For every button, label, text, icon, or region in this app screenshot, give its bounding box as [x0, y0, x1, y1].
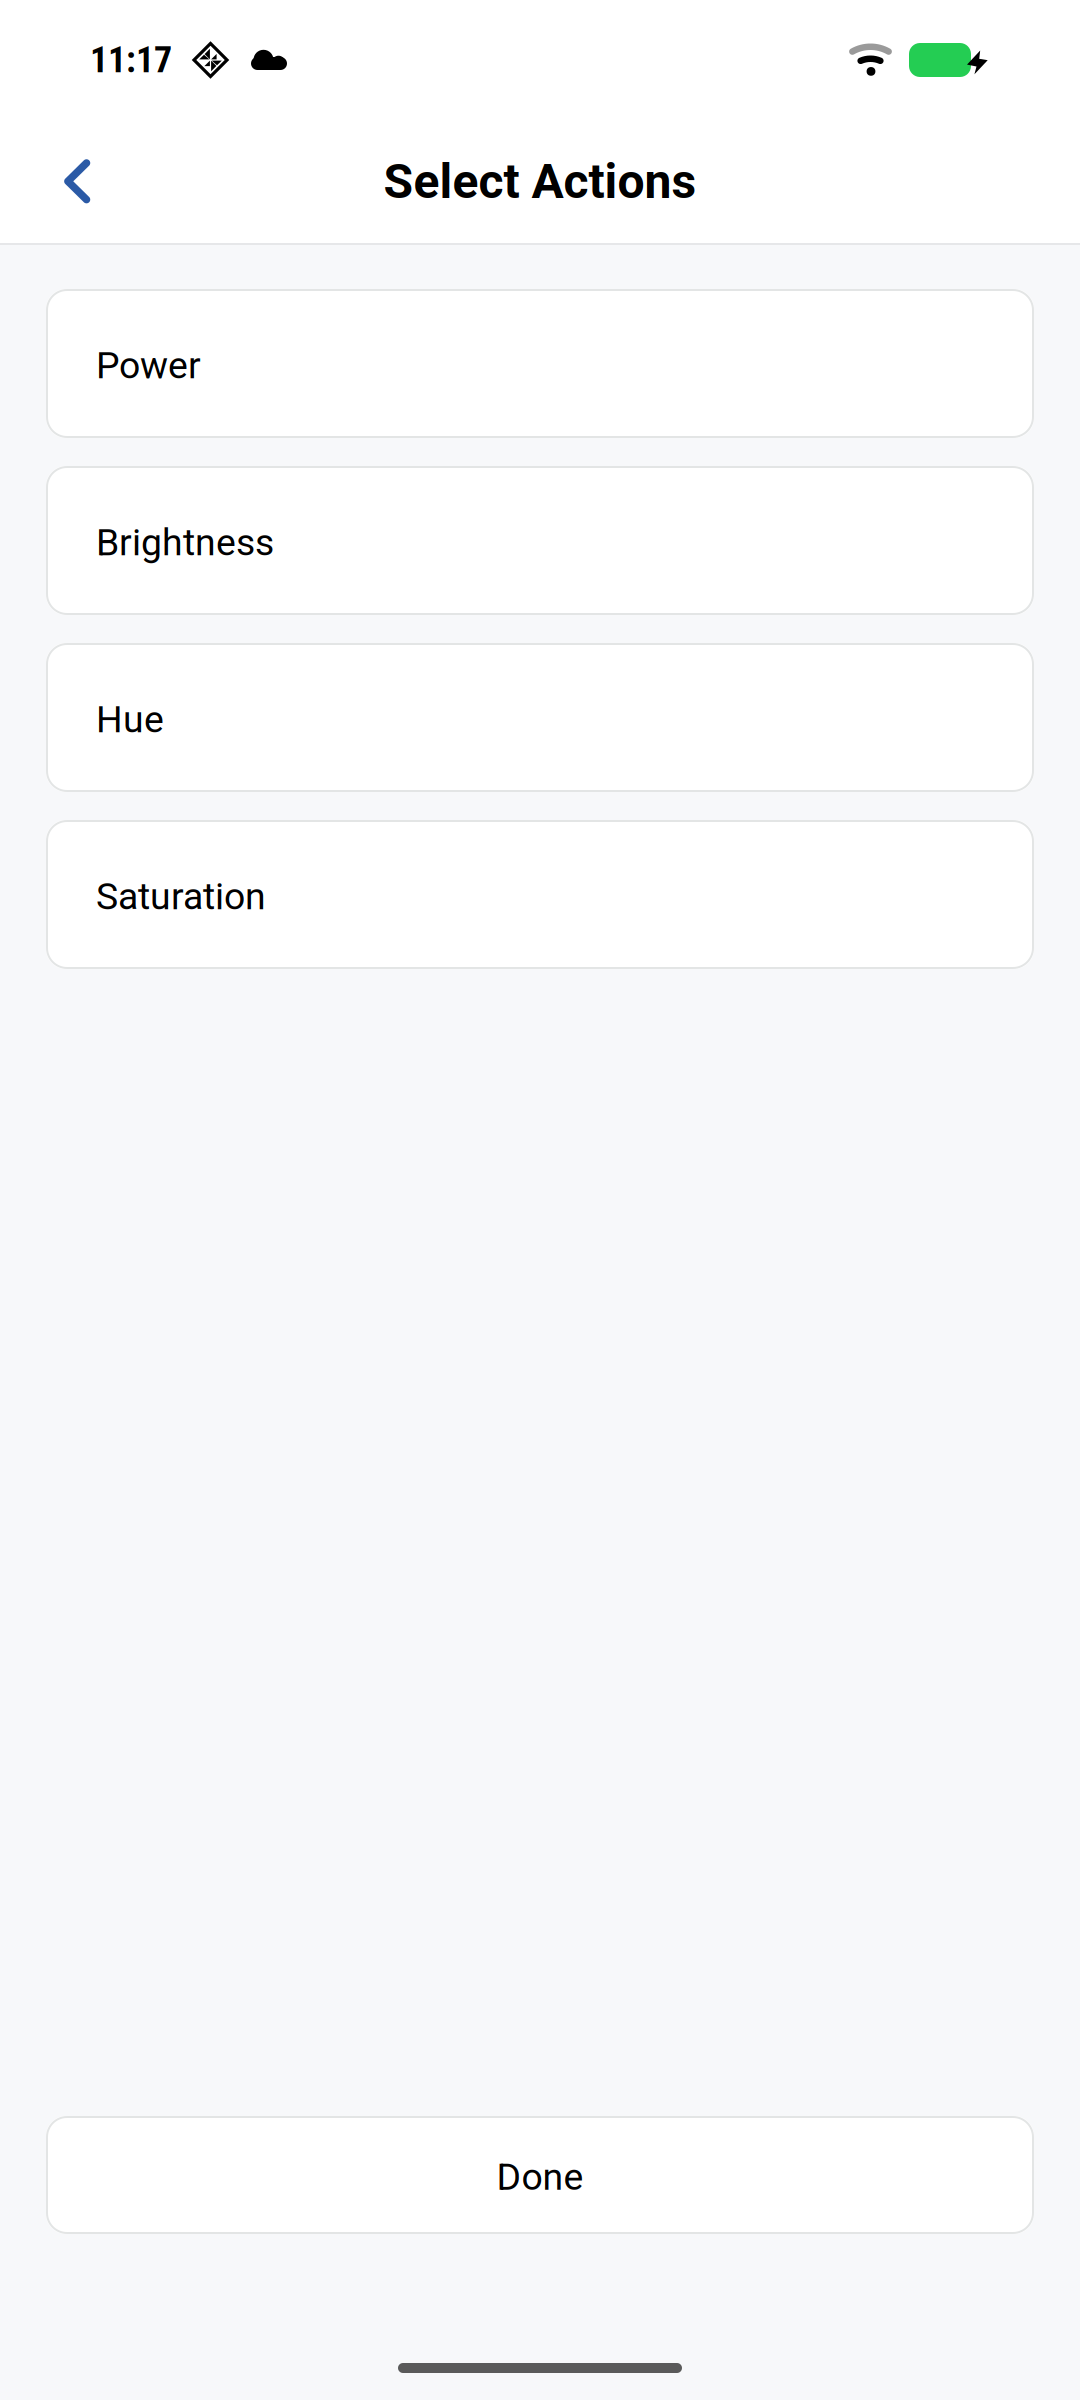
staticText: 11:17 [90, 39, 172, 81]
staticText: Power [96, 344, 201, 387]
staticText: Select Actions [383, 153, 696, 210]
staticText: Brightness [96, 521, 274, 564]
button[interactable]: Done [46, 2116, 1034, 2234]
button[interactable]: Power [46, 289, 1034, 438]
button[interactable]: Saturation [46, 820, 1034, 969]
staticText: Hue [96, 698, 164, 741]
button[interactable]: Back [0, 120, 115, 243]
staticText: Saturation [96, 875, 266, 918]
button[interactable]: Hue [46, 643, 1034, 792]
button[interactable]: Brightness [46, 466, 1034, 615]
staticText: Done [496, 2155, 583, 2199]
